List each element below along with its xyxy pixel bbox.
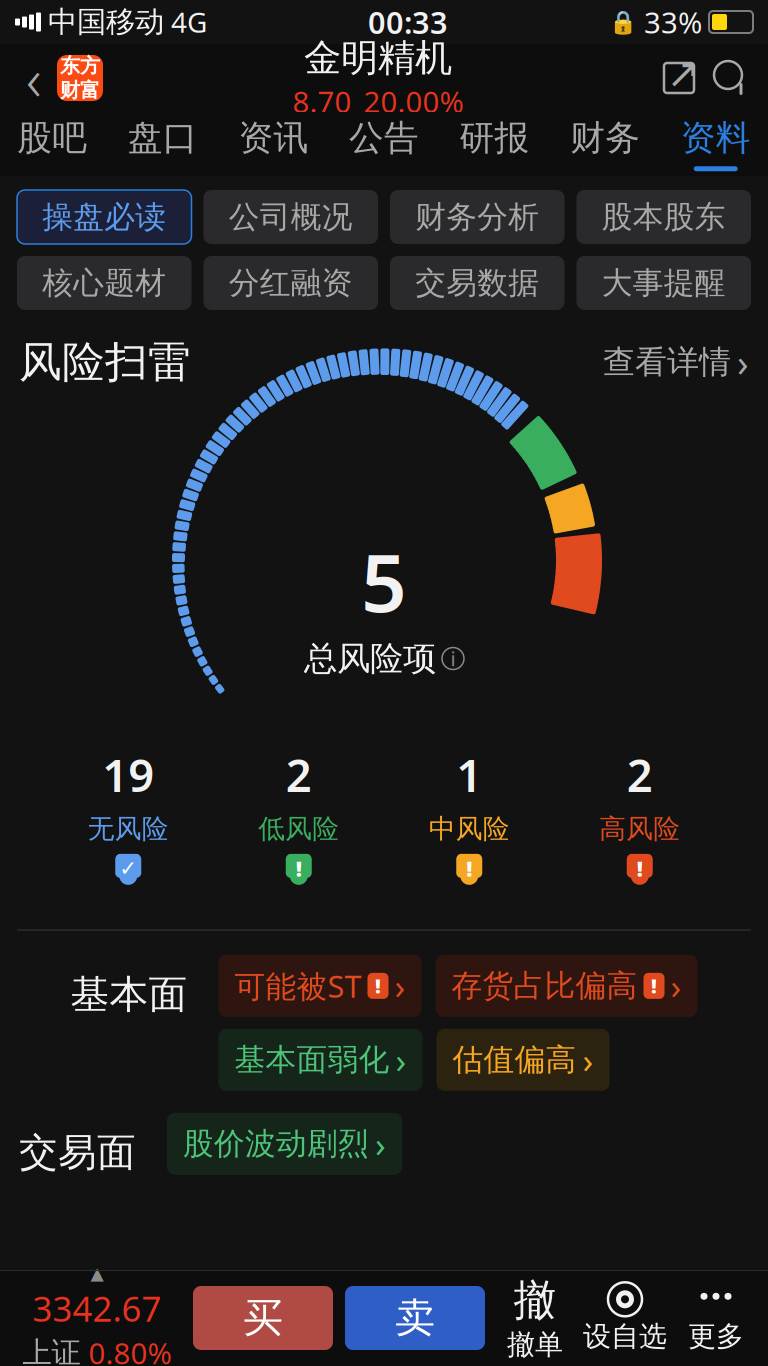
staticText: 3342.67 <box>32 1285 161 1331</box>
staticText: 可能被ST <box>234 965 361 1006</box>
button[interactable]: 买 <box>193 1286 333 1350</box>
staticText: ▲ <box>90 1264 103 1283</box>
button[interactable]: 2 <box>213 744 384 885</box>
button[interactable]: 估值偏高 <box>436 1029 609 1091</box>
button[interactable]: 基本面弱化 <box>218 1029 422 1091</box>
staticText: 交易面 <box>19 1129 136 1176</box>
staticText: 无风险 <box>88 813 169 845</box>
button[interactable]: 返回 <box>11 48 57 108</box>
staticText: 资料 <box>681 117 751 159</box>
staticText: › <box>395 1037 406 1083</box>
button[interactable]: 2 <box>554 744 725 885</box>
staticText: 19 <box>102 744 154 805</box>
staticText: 买 <box>243 1293 283 1342</box>
staticText: 分红融资 <box>229 264 353 302</box>
button[interactable]: ▲ <box>9 1264 185 1366</box>
staticText: 总风险项 <box>304 638 436 679</box>
staticText: 0.80% <box>88 1333 171 1366</box>
button[interactable]: 财务 <box>550 112 660 176</box>
staticText: 交易数据 <box>415 264 539 302</box>
staticText: › <box>394 963 405 1009</box>
staticText: 公告 <box>349 117 419 159</box>
staticText: 东方 <box>60 53 100 78</box>
staticText: ‹ <box>26 39 42 117</box>
staticText: 33% <box>644 2 702 41</box>
staticText: 估值偏高 <box>452 1041 576 1079</box>
staticText: ! <box>466 854 472 882</box>
staticText: 股本股东 <box>602 198 726 236</box>
button[interactable]: 设自选 <box>577 1282 673 1354</box>
button[interactable]: 存货占比偏高 <box>435 955 697 1017</box>
staticText: › <box>375 1121 386 1167</box>
staticText: 基本面弱化 <box>234 1041 389 1079</box>
staticText: 5 <box>361 528 407 634</box>
staticText: 00:33 <box>368 2 448 42</box>
button[interactable]: 资讯 <box>218 112 329 176</box>
staticText: 公司概况 <box>229 198 353 236</box>
button[interactable]: 资料 <box>660 112 768 176</box>
button[interactable]: 可能被ST <box>218 955 421 1017</box>
button[interactable]: 财务分析 <box>390 190 564 244</box>
staticText: 核心题材 <box>42 264 166 302</box>
staticText: ! <box>651 973 657 999</box>
staticText: ! <box>296 854 302 882</box>
staticText: 查看详情 <box>603 343 731 382</box>
button[interactable]: 公告 <box>329 112 439 176</box>
button[interactable]: 公司概况 <box>203 190 378 244</box>
staticText: 资讯 <box>238 117 308 159</box>
button[interactable]: 核心题材 <box>17 256 191 310</box>
staticText: 更多 <box>688 1319 744 1354</box>
staticText: 财务 <box>570 117 640 159</box>
button[interactable]: 股价波动剧烈 <box>167 1113 402 1175</box>
staticText: ! <box>375 973 381 999</box>
staticText: 财富 <box>60 78 100 103</box>
staticText: 操盘必读 <box>42 198 166 236</box>
staticText: 金明精机 <box>304 35 452 81</box>
staticText: 财务分析 <box>415 198 539 236</box>
staticText: ! <box>637 854 643 882</box>
staticText: 🔒 <box>609 9 637 35</box>
staticText: 上证 <box>22 1335 80 1366</box>
staticText: 1 <box>456 744 482 805</box>
staticText: 高风险 <box>599 813 680 845</box>
staticText: 撤单 <box>507 1327 563 1362</box>
staticText: 20.00% <box>363 82 463 121</box>
staticText: 卖 <box>395 1293 435 1342</box>
button[interactable]: 研报 <box>439 112 550 176</box>
staticText: 研报 <box>460 117 530 159</box>
button[interactable]: 1 <box>384 744 554 885</box>
button[interactable]: 19 <box>43 744 213 885</box>
button[interactable]: 东方财富 <box>57 55 103 101</box>
staticText: 低风险 <box>258 813 339 845</box>
staticText: 股吧 <box>17 117 87 159</box>
staticText: 大事提醒 <box>602 264 726 302</box>
button[interactable]: 撤 <box>493 1274 577 1362</box>
button[interactable]: 卖 <box>345 1286 485 1350</box>
staticText: 8.70 <box>292 82 351 121</box>
button[interactable]: 分红融资 <box>203 256 378 310</box>
staticText: 4G <box>171 3 207 41</box>
staticText: 存货占比偏高 <box>451 967 637 1005</box>
button[interactable]: 大事提醒 <box>576 256 751 310</box>
staticText: 中风险 <box>429 813 510 845</box>
staticText: 股价波动剧烈 <box>183 1125 369 1163</box>
staticText: 盘口 <box>128 117 198 159</box>
button[interactable]: 操盘必读 <box>17 190 191 244</box>
button[interactable]: 交易数据 <box>390 256 564 310</box>
staticText: ↗ <box>666 51 700 96</box>
staticText: 风险扫雷 <box>19 336 191 388</box>
button[interactable]: 盘口 <box>108 112 218 176</box>
staticText: 基本面 <box>70 971 187 1018</box>
staticText: 2 <box>627 744 653 805</box>
button[interactable]: 股本股东 <box>576 190 751 244</box>
staticText: › <box>582 1037 593 1083</box>
button[interactable]: 搜索 <box>705 48 757 108</box>
button[interactable]: 股吧 <box>0 112 108 176</box>
staticText: 中国移动 <box>48 4 164 40</box>
button[interactable]: 查看详情 <box>603 337 749 387</box>
staticText: 2 <box>286 744 312 805</box>
button[interactable]: 分享 <box>653 48 705 108</box>
button[interactable]: 更多 <box>673 1282 759 1354</box>
staticText: 撤 <box>513 1274 556 1326</box>
button[interactable]: 风险项说明 <box>442 647 464 669</box>
